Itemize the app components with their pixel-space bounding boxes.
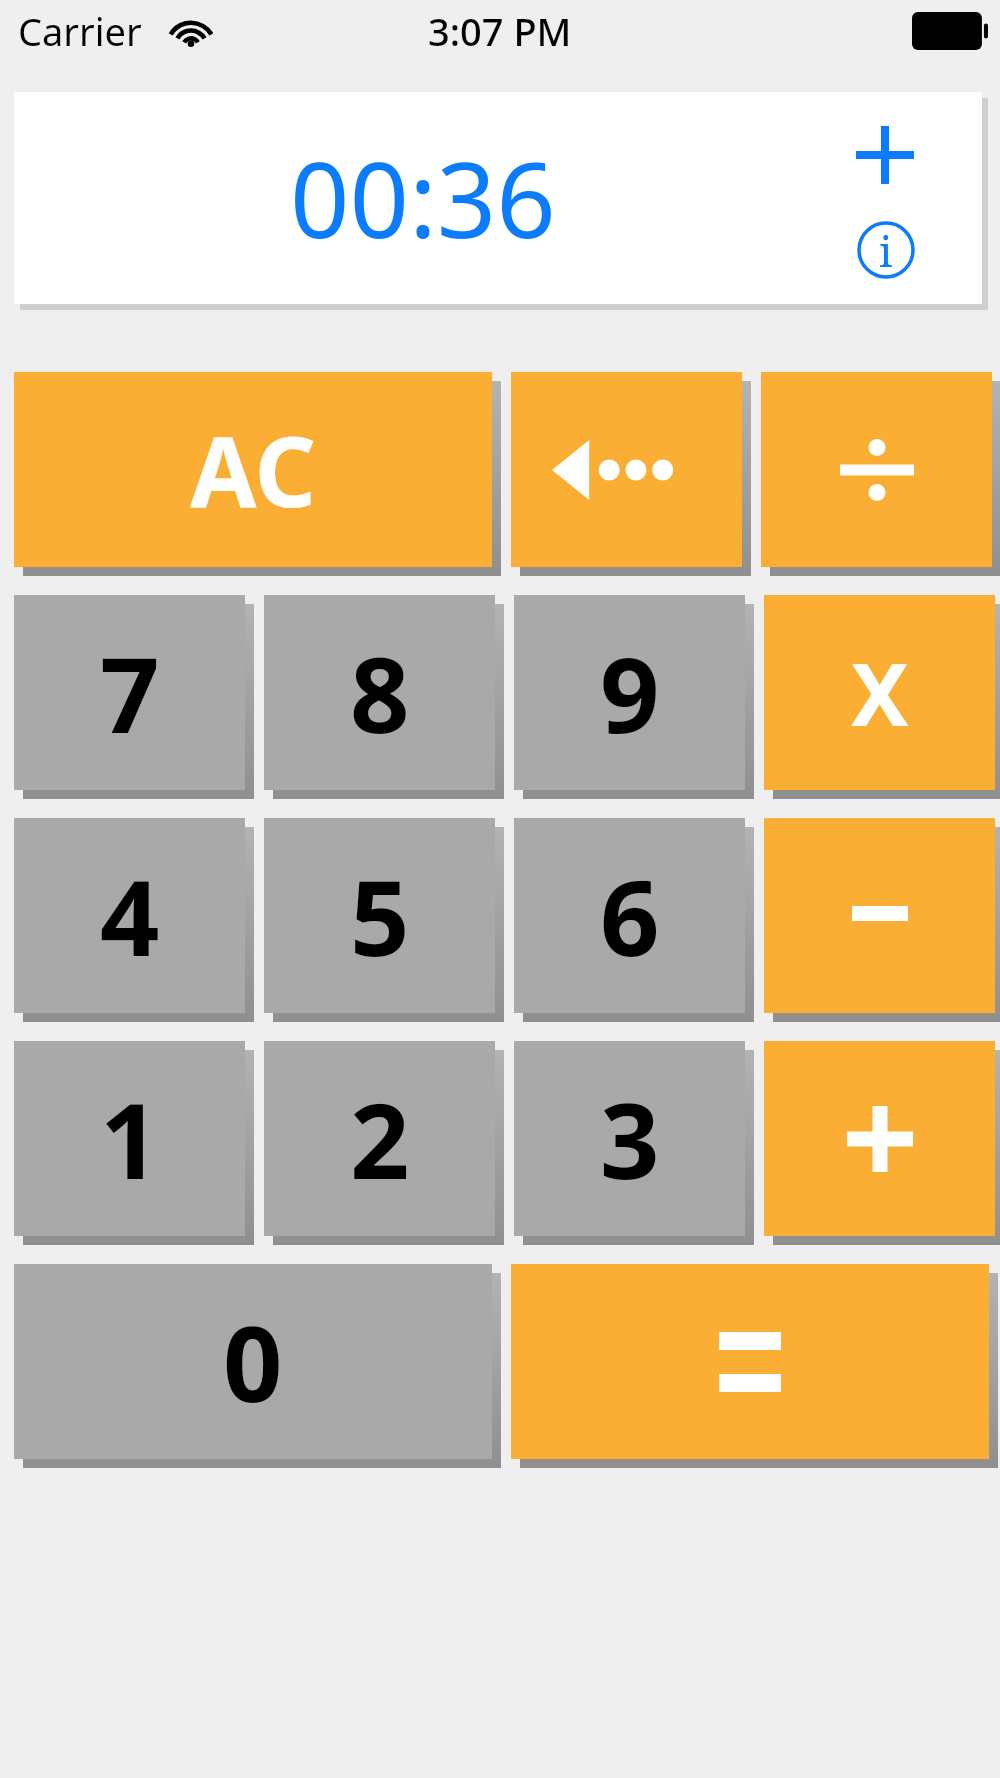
staticText: X	[851, 634, 909, 751]
button[interactable]: All clear	[14, 372, 492, 567]
staticText: 2	[350, 1068, 410, 1210]
button[interactable]: Divide	[761, 372, 992, 567]
staticText: 00:36	[290, 127, 556, 269]
button[interactable]: Info	[840, 204, 932, 296]
staticText: Carrier	[18, 5, 142, 57]
button[interactable]: 8	[264, 595, 495, 790]
staticText: 6	[600, 845, 660, 987]
button[interactable]: +	[764, 1041, 995, 1236]
button[interactable]: 1	[14, 1041, 245, 1236]
staticText: AC	[190, 404, 317, 535]
button[interactable]: -	[764, 818, 995, 1013]
staticText: 4	[100, 845, 160, 987]
other: Battery full	[912, 12, 988, 50]
staticText: i	[879, 222, 893, 279]
button[interactable]: 2	[264, 1041, 495, 1236]
staticText: 1	[100, 1068, 160, 1210]
staticText: 3:07 PM	[428, 5, 572, 57]
button[interactable]: 3	[514, 1041, 745, 1236]
staticText: 3	[600, 1068, 660, 1210]
staticText: 8	[350, 622, 410, 764]
staticText: 0	[223, 1291, 283, 1433]
button[interactable]: x	[764, 595, 995, 790]
button[interactable]: Backspace	[511, 372, 742, 567]
staticText: 9	[600, 622, 660, 764]
button[interactable]: 4	[14, 818, 245, 1013]
button[interactable]: 6	[514, 818, 745, 1013]
button[interactable]: Equals	[511, 1264, 989, 1459]
button[interactable]: 7	[14, 595, 245, 790]
staticText: 7	[100, 622, 160, 764]
button[interactable]: 0	[14, 1264, 492, 1459]
button[interactable]: 5	[264, 818, 495, 1013]
button[interactable]: Add lap	[840, 110, 930, 200]
staticText: 5	[350, 845, 410, 987]
other: Wi-Fi	[168, 11, 214, 51]
button[interactable]: 9	[514, 595, 745, 790]
